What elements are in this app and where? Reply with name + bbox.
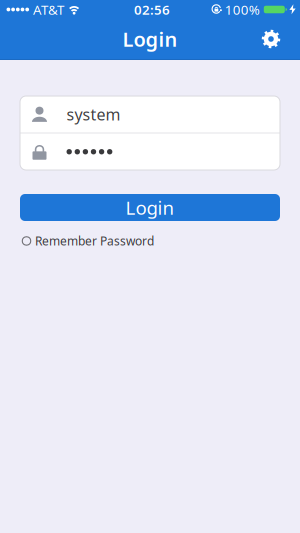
button[interactable]: Remember Password bbox=[22, 233, 154, 249]
staticText: AT&T bbox=[33, 1, 64, 18]
button[interactable]: Username field bbox=[20, 96, 280, 132]
staticText: system bbox=[66, 104, 120, 125]
staticText: Remember Password bbox=[35, 233, 154, 249]
button[interactable]: Settings bbox=[260, 28, 282, 50]
staticText: Login bbox=[122, 26, 177, 52]
button[interactable]: Password field bbox=[20, 133, 280, 170]
staticText: Login bbox=[125, 195, 174, 220]
staticText: 02:56 bbox=[134, 1, 170, 18]
staticText: 100% bbox=[225, 1, 260, 18]
button[interactable]: Login bbox=[20, 194, 280, 221]
